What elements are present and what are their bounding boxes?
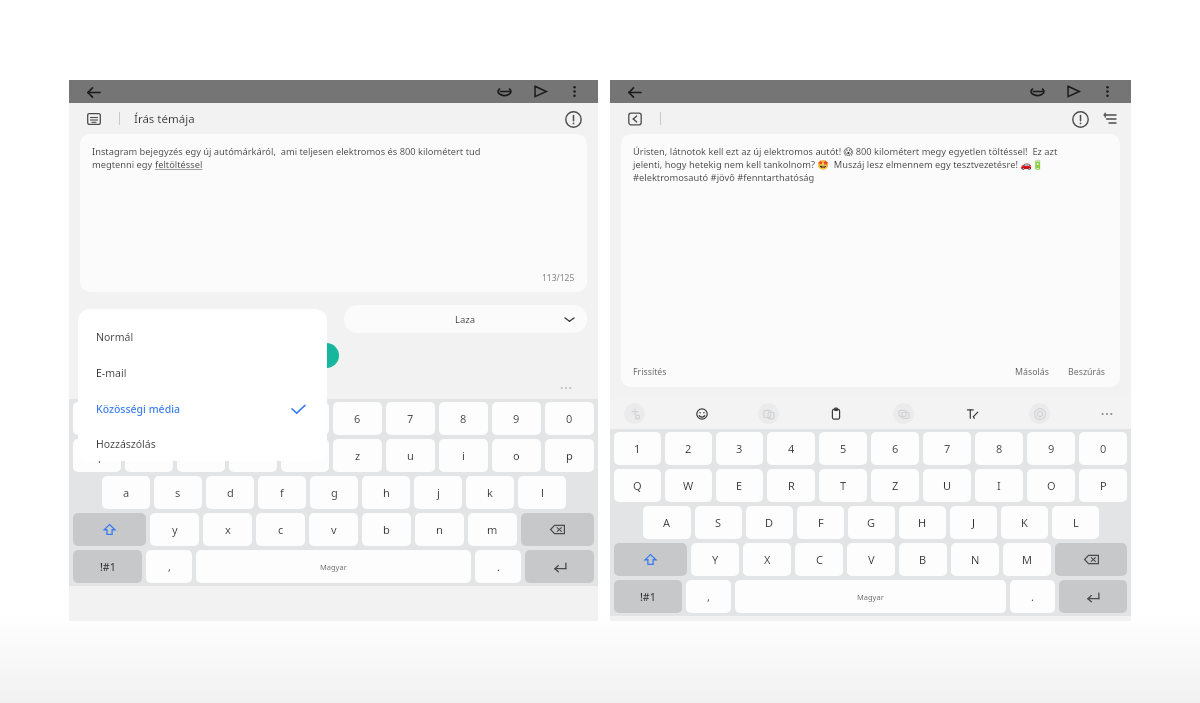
button[interactable]: 5	[281, 402, 329, 435]
button[interactable]: More options	[1095, 80, 1119, 103]
button[interactable]: More options	[562, 80, 586, 103]
button[interactable]: T	[819, 469, 867, 502]
button[interactable]: Tune	[1099, 108, 1121, 130]
button[interactable]: 1	[73, 402, 121, 435]
button[interactable]: 7	[386, 402, 435, 435]
button[interactable]: Backspace	[521, 513, 594, 546]
button[interactable]: F	[797, 506, 844, 539]
button[interactable]: 2	[665, 432, 712, 465]
button[interactable]: J	[950, 506, 997, 539]
button[interactable]: Symbols	[614, 580, 682, 613]
button[interactable]: 9	[492, 402, 541, 435]
button[interactable]: 7	[923, 432, 971, 465]
button[interactable]: l	[518, 476, 566, 509]
button[interactable]: 5	[819, 432, 867, 465]
button[interactable]: k	[466, 476, 514, 509]
button[interactable]: x	[203, 513, 252, 546]
button[interactable]: 8	[439, 402, 488, 435]
button[interactable]: Clipboard	[825, 403, 846, 424]
button[interactable]: Keyboard	[83, 108, 105, 130]
button[interactable]: C	[795, 543, 843, 576]
button[interactable]: K	[1001, 506, 1048, 539]
button[interactable]: W	[665, 469, 712, 502]
button[interactable]: Normál	[78, 319, 327, 355]
button[interactable]: s	[154, 476, 202, 509]
button[interactable]: Send	[528, 80, 552, 103]
button[interactable]: Enter	[1059, 580, 1127, 613]
button[interactable]: B	[899, 543, 947, 576]
button[interactable]: Period	[475, 550, 521, 583]
button[interactable]: Emoji	[691, 403, 712, 424]
button[interactable]: Backspace	[1055, 543, 1127, 576]
button[interactable]: 0	[1079, 432, 1127, 465]
button[interactable]: V	[847, 543, 895, 576]
button[interactable]: 0	[545, 402, 594, 435]
button[interactable]: c	[256, 513, 305, 546]
button[interactable]: v	[309, 513, 358, 546]
button[interactable]: u	[386, 439, 435, 472]
button[interactable]: Shift	[73, 513, 146, 546]
button[interactable]: 3	[716, 432, 763, 465]
button[interactable]: A	[643, 506, 691, 539]
button[interactable]: Comma	[146, 550, 192, 583]
button[interactable]: M	[1003, 543, 1051, 576]
button[interactable]: Frissítés	[633, 366, 667, 378]
button[interactable]: 9	[1027, 432, 1075, 465]
button[interactable]: Info	[1069, 108, 1091, 130]
button[interactable]: X	[743, 543, 791, 576]
button[interactable]: p	[545, 439, 594, 472]
button[interactable]: Y	[691, 543, 739, 576]
button[interactable]: Q	[614, 469, 661, 502]
button[interactable]: O	[1027, 469, 1075, 502]
button[interactable]: Previous	[624, 108, 646, 130]
button[interactable]: 3	[177, 402, 225, 435]
button[interactable]: q	[73, 439, 121, 472]
button[interactable]: Attach	[1025, 80, 1049, 103]
button[interactable]: z	[333, 439, 382, 472]
button[interactable]: j	[414, 476, 462, 509]
button[interactable]: Handwriting	[961, 403, 982, 424]
button[interactable]: w	[125, 439, 173, 472]
button[interactable]: L	[1052, 506, 1099, 539]
button[interactable]: b	[362, 513, 411, 546]
button[interactable]: g	[310, 476, 358, 509]
button[interactable]: D	[746, 506, 793, 539]
button[interactable]: Send	[1061, 80, 1085, 103]
button[interactable]: 4	[767, 432, 815, 465]
button[interactable]: Attach	[492, 80, 516, 103]
button[interactable]: S	[695, 506, 742, 539]
button[interactable]: 2	[125, 402, 173, 435]
button[interactable]: Sticker	[624, 403, 645, 424]
button[interactable]: More	[1097, 404, 1117, 424]
button[interactable]: Létrehozás	[219, 343, 339, 368]
button[interactable]: R	[767, 469, 815, 502]
button[interactable]: a	[102, 476, 150, 509]
button[interactable]: 6	[333, 402, 382, 435]
button[interactable]: 1	[614, 432, 661, 465]
button[interactable]: H	[899, 506, 946, 539]
button[interactable]: Beszúrás	[1068, 366, 1106, 378]
button[interactable]: Info	[562, 108, 584, 130]
button[interactable]: n	[415, 513, 464, 546]
button[interactable]: m	[468, 513, 517, 546]
button[interactable]: Hozzászólás	[78, 427, 327, 461]
button[interactable]: 8	[975, 432, 1023, 465]
button[interactable]: Translate	[893, 403, 914, 424]
button[interactable]: Back	[83, 82, 103, 102]
button[interactable]: Z	[871, 469, 919, 502]
button[interactable]: Space	[196, 550, 471, 583]
button[interactable]: Közösségi média	[78, 391, 327, 427]
button[interactable]: Shift	[614, 543, 687, 576]
button[interactable]: N	[951, 543, 999, 576]
button[interactable]: Symbols	[73, 550, 142, 583]
button[interactable]: Comma	[686, 580, 731, 613]
button[interactable]: Period	[1010, 580, 1055, 613]
button[interactable]: y	[150, 513, 199, 546]
button[interactable]: Laza	[344, 305, 587, 333]
button[interactable]: Space	[735, 580, 1006, 613]
button[interactable]: GIF	[758, 403, 779, 424]
